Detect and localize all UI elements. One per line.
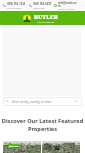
staticText: LAWN & TIMBER CO. [37,21,55,23]
button[interactable]: info@butler.com [54,1,79,10]
staticText: For Sale [9,144,19,147]
staticText: info@butler.com [58,1,79,7]
staticText: (505) 555-5678 [33,2,52,6]
staticText: Enter an city, county, or state [12,100,52,104]
button[interactable]: (505) 555-5678 [29,2,54,9]
button[interactable]: BUTLER [23,13,58,23]
staticText: Call us today [7,6,22,9]
button[interactable]: (505) 555-1234 [3,2,29,9]
staticText: Discover Our Latest Featured Properties [1,117,84,133]
button[interactable]: Enter an city, county, or state [3,97,82,106]
staticText: Office line [33,6,45,9]
staticText: BUTLER [34,13,58,21]
staticText: Email us today [58,7,75,10]
button[interactable] [42,141,80,153]
button[interactable]: For Sale [3,141,41,153]
staticText: (505) 555-1234 [7,2,26,6]
